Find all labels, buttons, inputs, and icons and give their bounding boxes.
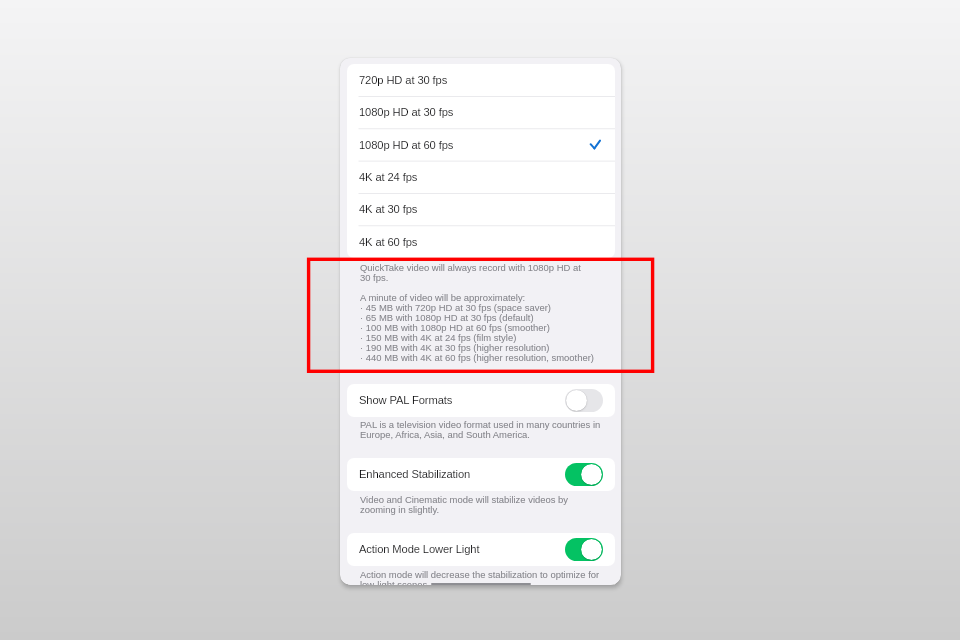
button[interactable]: 1080p HD at 30 fps bbox=[347, 96, 615, 128]
staticText: Show PAL Formats bbox=[359, 394, 453, 407]
button[interactable]: 4K at 30 fps bbox=[347, 193, 615, 225]
button[interactable]: 4K at 24 fps bbox=[347, 161, 615, 193]
staticText: 4K at 60 fps bbox=[359, 236, 418, 249]
staticText: A minute of video will be approximately:… bbox=[360, 293, 617, 363]
staticText: Action mode will decrease the stabilizat… bbox=[360, 570, 617, 585]
button[interactable]: 4K at 60 fps bbox=[347, 226, 615, 258]
staticText: 1080p HD at 60 fps bbox=[359, 139, 454, 152]
button[interactable]: Action Mode Lower Light bbox=[347, 533, 615, 566]
staticText: PAL is a television video format used in… bbox=[360, 420, 617, 440]
other: Selected bbox=[590, 139, 600, 149]
button[interactable]: 720p HD at 30 fps bbox=[347, 64, 615, 96]
staticText: Video and Cinematic mode will stabilize … bbox=[360, 495, 617, 515]
staticText: 1080p HD at 30 fps bbox=[359, 106, 454, 119]
button[interactable]: Show PAL Formats bbox=[347, 384, 615, 417]
staticText: 4K at 24 fps bbox=[359, 171, 418, 184]
other: Show PAL Formats bbox=[565, 389, 603, 412]
staticText: 4K at 30 fps bbox=[359, 203, 418, 216]
staticText: 720p HD at 30 fps bbox=[359, 74, 448, 87]
staticText: QuickTake video will always record with … bbox=[360, 263, 617, 283]
button[interactable]: 1080p HD at 60 fps bbox=[347, 129, 615, 161]
staticText: Enhanced Stabilization bbox=[359, 468, 471, 481]
staticText: Action Mode Lower Light bbox=[359, 543, 480, 556]
other: Enhanced Stabilization bbox=[565, 463, 603, 486]
button[interactable]: Enhanced Stabilization bbox=[347, 458, 615, 491]
other: Action Mode Lower Light bbox=[565, 538, 603, 561]
